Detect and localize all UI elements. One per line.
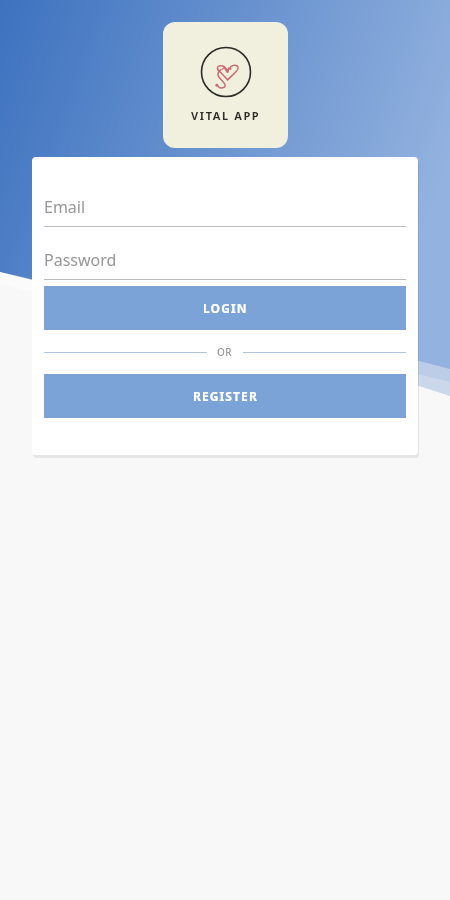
staticText: VITAL APP <box>191 108 261 123</box>
button[interactable]: LOGIN <box>44 286 406 330</box>
button[interactable]: REGISTER <box>44 374 406 418</box>
button[interactable]: Vital App logo <box>163 22 288 148</box>
staticText: Password <box>44 249 117 271</box>
staticText: Email <box>44 196 86 218</box>
staticText: OR <box>217 345 233 359</box>
button[interactable]: Password <box>44 247 406 280</box>
staticText: REGISTER <box>193 388 258 404</box>
staticText: LOGIN <box>203 300 248 316</box>
button[interactable]: Email <box>44 194 406 227</box>
